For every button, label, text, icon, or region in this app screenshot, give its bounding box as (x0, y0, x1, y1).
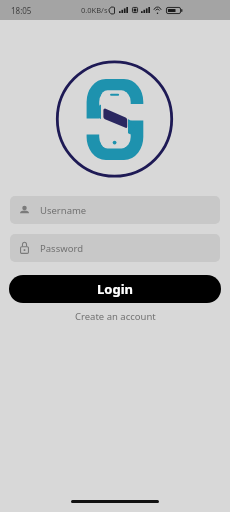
button[interactable]: Password (10, 234, 220, 262)
button[interactable]: Username (10, 196, 220, 224)
staticText: Password (40, 242, 83, 255)
staticText: Login (97, 280, 133, 298)
button[interactable]: Login (9, 275, 221, 303)
staticText: 18:05 (11, 5, 32, 16)
button[interactable]: Create an account (69, 308, 162, 325)
staticText: Username (40, 204, 87, 217)
staticText: 0.0KB/s (81, 5, 108, 15)
